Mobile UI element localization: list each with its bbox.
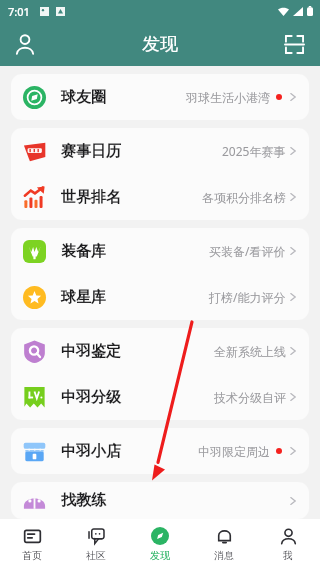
staticText: 赛事日历 (61, 142, 121, 161)
staticText: 发现 (142, 33, 178, 56)
button[interactable]: 球友圈 (11, 74, 309, 120)
button[interactable]: 社区 (64, 519, 128, 569)
staticText: 找教练 (61, 491, 106, 510)
button[interactable]: 消息 (192, 519, 256, 569)
staticText: 中羽限定周边 (198, 444, 270, 459)
staticText: 技术分级自评 (214, 390, 286, 405)
button[interactable]: Profile (6, 25, 44, 63)
staticText: 中羽小店 (61, 442, 121, 461)
staticText: 买装备/看评价 (209, 243, 286, 259)
staticText: 社区 (86, 549, 106, 562)
button[interactable]: 中羽鉴定 (11, 328, 309, 374)
staticText: 中羽分级 (61, 388, 121, 407)
staticText: 球星库 (61, 288, 106, 307)
button[interactable]: 世界排名 (11, 174, 309, 220)
staticText: 打榜/能力评分 (209, 289, 286, 305)
staticText: 装备库 (61, 242, 106, 261)
staticText: 2025年赛事 (222, 143, 286, 159)
button[interactable]: 找教练 (11, 482, 309, 519)
staticText: 首页 (22, 549, 42, 562)
button[interactable]: 首页 (0, 519, 64, 569)
button[interactable]: 中羽小店 (11, 428, 309, 474)
button[interactable]: 我 (256, 519, 320, 569)
button[interactable]: 中羽分级 (11, 374, 309, 420)
staticText: 各项积分排名榜 (202, 190, 286, 205)
button[interactable]: 球星库 (11, 274, 309, 320)
staticText: 全新系统上线 (214, 344, 286, 359)
staticText: 世界排名 (61, 188, 121, 207)
staticText: 发现 (150, 549, 170, 562)
button[interactable]: Scan QR code (276, 26, 312, 62)
button[interactable]: 发现 (128, 519, 192, 569)
button[interactable]: 装备库 (11, 228, 309, 274)
staticText: 我 (283, 549, 293, 562)
staticText: 羽球生活小港湾 (186, 90, 270, 105)
staticText: 消息 (214, 549, 234, 562)
staticText: 球友圈 (61, 88, 106, 107)
staticText: 7:01 (8, 4, 30, 19)
button[interactable]: 赛事日历 (11, 128, 309, 174)
staticText: 中羽鉴定 (61, 342, 121, 361)
